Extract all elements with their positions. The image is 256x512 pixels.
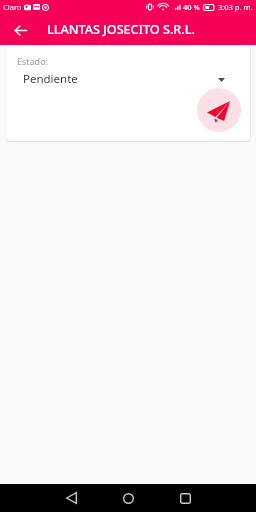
button[interactable]: Recent apps <box>171 484 199 512</box>
button[interactable]: Send <box>197 88 241 132</box>
button[interactable]: Open state dropdown <box>209 68 233 92</box>
staticText: Claro <box>3 2 22 12</box>
staticText: Pendiente <box>23 71 78 87</box>
button[interactable]: Back <box>7 17 33 43</box>
staticText: LLANTAS JOSECITO S.R.L. <box>47 21 195 38</box>
button[interactable]: Home <box>114 484 142 512</box>
staticText: 3:03 p. m. <box>218 2 253 12</box>
staticText: Estado: <box>17 55 49 67</box>
staticText: 40 % <box>183 2 200 12</box>
button[interactable]: Back <box>57 484 85 512</box>
